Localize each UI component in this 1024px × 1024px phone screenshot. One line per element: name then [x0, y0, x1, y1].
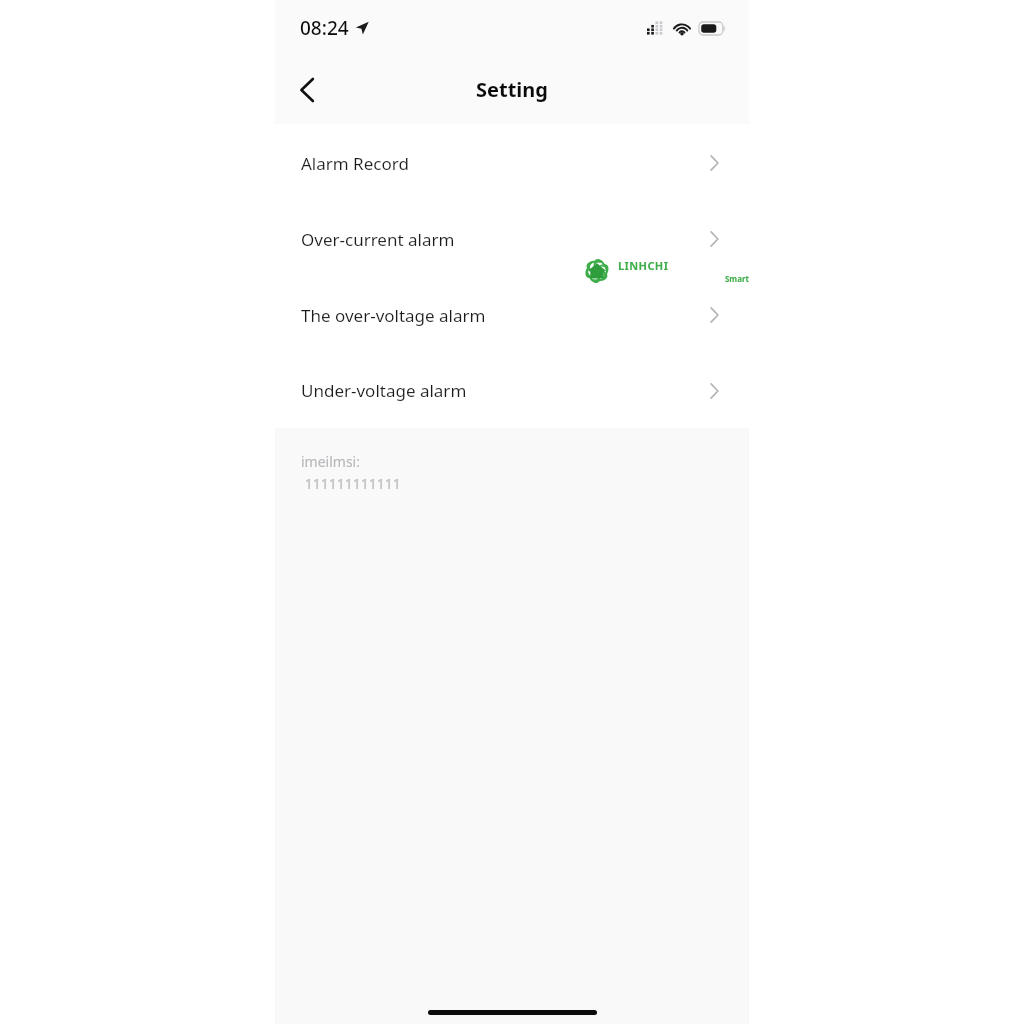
- button[interactable]: Under-voltage alarm: [275, 353, 749, 428]
- staticText: LINHCHI: [618, 258, 669, 273]
- button[interactable]: Over-current alarm: [275, 201, 749, 277]
- button[interactable]: Alarm Record: [275, 125, 749, 201]
- staticText: 08:24: [300, 15, 349, 41]
- button[interactable]: Back: [283, 66, 331, 114]
- staticText: The over-voltage alarm: [301, 304, 486, 327]
- staticText: imeilmsi:: [301, 452, 360, 471]
- staticText: Under-voltage alarm: [301, 379, 467, 402]
- staticText: Smart: [618, 273, 749, 284]
- button[interactable]: The over-voltage alarm: [275, 277, 749, 353]
- staticText: 111111111111: [301, 474, 401, 493]
- staticText: Over-current alarm: [301, 228, 455, 251]
- staticText: Setting: [476, 76, 548, 103]
- staticText: Alarm Record: [301, 152, 409, 175]
